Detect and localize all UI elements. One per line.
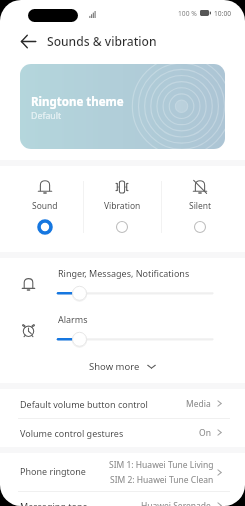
button[interactable]: Back — [14, 27, 42, 55]
staticText: Messaging tone — [20, 500, 88, 506]
staticText: On — [199, 427, 211, 439]
staticText: Silent — [189, 200, 212, 212]
staticText: 10:00 — [214, 9, 232, 18]
staticText: 100 % — [178, 9, 197, 18]
staticText: Huawei Serenade — [141, 500, 211, 506]
button[interactable]: Default volume button control — [0, 389, 245, 418]
staticText: SIM 1: Huawei Tune Living — [109, 459, 214, 471]
button[interactable]: Sound — [6, 166, 83, 252]
staticText: SIM 2: Huawei Tune Clean — [110, 474, 214, 486]
staticText: Default — [31, 110, 62, 122]
staticText: Ringer, Messages, Notifications — [58, 267, 190, 279]
button[interactable]: Volume control gestures — [0, 418, 245, 447]
button[interactable]: Show more — [0, 350, 245, 383]
staticText: Alarms — [58, 313, 88, 325]
staticText: Volume control gestures — [20, 427, 124, 439]
button[interactable]: Phone ringtone — [0, 453, 245, 491]
button[interactable] — [50, 331, 222, 348]
button[interactable]: Vibration — [83, 166, 161, 252]
button[interactable]: Silent — [161, 166, 239, 252]
button[interactable]: Ringtone theme — [20, 64, 225, 149]
staticText: Phone ringtone — [20, 465, 86, 477]
staticText: Sound — [32, 200, 58, 212]
button[interactable]: Messaging tone — [0, 491, 245, 506]
button[interactable] — [50, 285, 222, 302]
staticText: Default volume button control — [20, 398, 148, 410]
staticText: Show more — [89, 360, 140, 373]
staticText: Media — [186, 398, 211, 410]
staticText: Vibration — [104, 200, 141, 212]
staticText: Ringtone theme — [31, 94, 124, 110]
staticText: Sounds & vibration — [47, 33, 157, 49]
